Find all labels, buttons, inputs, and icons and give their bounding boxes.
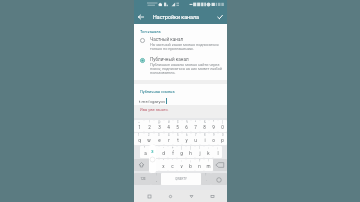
staticText: m [206, 164, 211, 169]
button[interactable]: & [200, 120, 209, 132]
button[interactable]: QWERTY [161, 173, 201, 185]
button[interactable]: # [150, 146, 159, 158]
staticText: 1 [138, 134, 140, 137]
staticText: QWERTY [175, 177, 187, 181]
staticText: + [172, 147, 174, 150]
button[interactable]: Shift [134, 159, 149, 171]
staticText: b [189, 164, 192, 169]
staticText: ! [208, 160, 209, 163]
button[interactable]: : [177, 159, 186, 171]
button[interactable]: ) [186, 146, 195, 158]
button[interactable]: Hide keyboard [206, 190, 218, 202]
button[interactable]: Done [213, 9, 227, 24]
staticText: - [163, 147, 164, 150]
button[interactable]: Home [164, 190, 176, 202]
staticText: v [180, 164, 183, 169]
button[interactable]: Публичный канал [134, 57, 227, 76]
button[interactable]: Back [134, 9, 148, 24]
button[interactable]: 9 [209, 133, 218, 145]
button[interactable]: ~ [134, 120, 144, 132]
button[interactable]: ' [168, 159, 177, 171]
button[interactable]: ! [204, 159, 213, 171]
staticText: На частный канал можно подписаться [150, 43, 219, 47]
staticText: r [168, 138, 170, 143]
button[interactable]: ! [149, 159, 159, 171]
staticText: f [172, 151, 174, 156]
button[interactable]: * [209, 120, 218, 132]
staticText: 1 [138, 125, 141, 130]
staticText: s [153, 151, 156, 156]
button[interactable]: Recents [143, 190, 155, 202]
staticText: n [198, 164, 201, 169]
staticText: 8 [203, 125, 206, 130]
button[interactable]: 1 [134, 133, 144, 145]
staticText: только по приглашению. [150, 47, 194, 51]
button[interactable]: ( [177, 146, 186, 158]
button[interactable]: 5 [173, 133, 182, 145]
staticText: 123 [140, 177, 146, 181]
staticText: 2 [148, 125, 151, 130]
button[interactable]: 0 [218, 133, 227, 145]
button[interactable]: % [182, 120, 191, 132]
staticText: 4 [167, 125, 170, 130]
button[interactable]: ; [213, 146, 222, 158]
button[interactable]: ( [218, 120, 227, 132]
button[interactable]: $ [173, 120, 182, 132]
staticText: 9 [212, 125, 215, 130]
staticText: 8 [204, 134, 206, 137]
staticText: Настройки канала [153, 14, 199, 20]
button[interactable]: 7 [191, 133, 200, 145]
staticText: ~ [138, 121, 140, 124]
button[interactable]: 3 [154, 133, 164, 145]
button[interactable]: @ [154, 120, 164, 132]
button[interactable]: 2 [144, 133, 154, 145]
staticText: l [217, 151, 219, 156]
button[interactable]: # [164, 120, 173, 132]
staticText: 6 [185, 125, 188, 130]
staticText: o [212, 138, 215, 143]
staticText: * [213, 121, 215, 124]
staticText: d [162, 151, 165, 156]
button[interactable]: ! [144, 120, 154, 132]
staticText: c [171, 164, 174, 169]
staticText: 9 [213, 134, 215, 137]
staticText: : [208, 147, 209, 150]
staticText: ; [190, 160, 191, 163]
staticText: ? [199, 160, 201, 163]
staticText: 0 [222, 134, 224, 137]
button[interactable]: Back [185, 190, 197, 202]
button[interactable]: 8 [200, 133, 209, 145]
button[interactable]: ; [186, 159, 195, 171]
staticText: ! [149, 121, 150, 124]
staticText: Имя уже занято. [140, 108, 169, 112]
button[interactable]: / [195, 146, 204, 158]
staticText: 7 [195, 134, 197, 137]
button[interactable]: Backspace [213, 159, 227, 171]
button[interactable]: * [140, 146, 150, 158]
staticText: j [199, 151, 201, 156]
button[interactable]: " [159, 159, 168, 171]
staticText: 5 [177, 134, 179, 137]
staticText: з [151, 148, 154, 154]
button[interactable]: Частный канал [134, 37, 227, 52]
staticText: , [156, 178, 157, 182]
staticText: 6 [186, 134, 188, 137]
button[interactable]: - [159, 146, 168, 158]
button[interactable]: ? [195, 159, 204, 171]
button[interactable]: 4 [164, 133, 173, 145]
button[interactable]: ^ [191, 120, 200, 132]
button[interactable]: 6 [182, 133, 191, 145]
button[interactable]: + [168, 146, 177, 158]
button[interactable]: : [204, 146, 213, 158]
staticText: * [144, 147, 146, 150]
button[interactable]: 123 [134, 173, 151, 185]
button[interactable]: Emoji [211, 173, 227, 185]
staticText: h [189, 151, 192, 156]
